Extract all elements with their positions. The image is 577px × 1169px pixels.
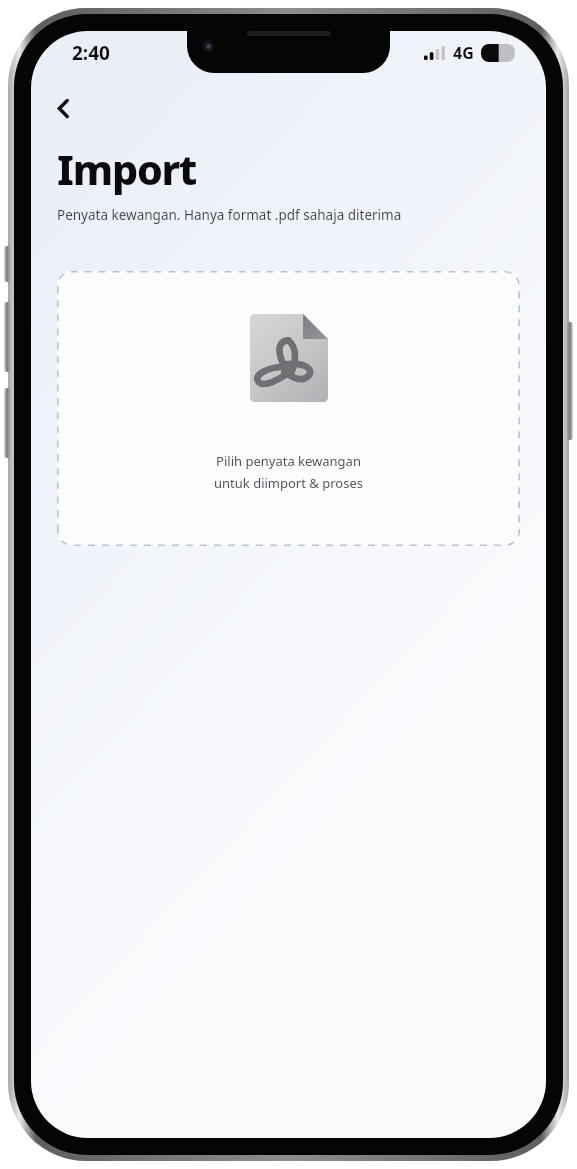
staticText: 4G (453, 42, 474, 64)
button[interactable]: Back (40, 85, 86, 131)
staticText: Pilih penyata kewangan (216, 452, 361, 470)
staticText: Penyata kewangan. Hanya format .pdf saha… (57, 206, 402, 224)
button[interactable]: Pilih penyata kewangan (57, 271, 520, 546)
staticText: Import (57, 141, 197, 197)
staticText: 2:40 (72, 40, 110, 66)
staticText: untuk diimport & proses (214, 474, 363, 492)
